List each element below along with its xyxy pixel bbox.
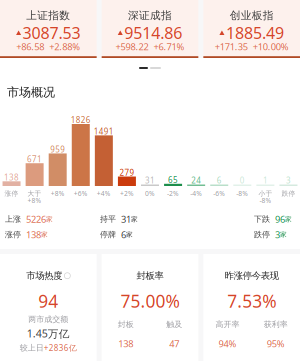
- staticText: 1826: [71, 115, 91, 125]
- staticText: 两市成交额: [28, 314, 68, 324]
- staticText: 3: [275, 228, 280, 241]
- staticText: 1885.49: [226, 22, 284, 43]
- staticText: 家: [126, 230, 133, 239]
- staticText: 跌停: [254, 230, 270, 239]
- staticText: 1491: [94, 126, 114, 137]
- staticText: +2.88%: [49, 40, 80, 53]
- staticText: 小于: [258, 189, 272, 198]
- staticText: 65: [168, 174, 178, 185]
- staticText: -8%: [259, 196, 271, 205]
- staticText: 获利率: [264, 319, 288, 329]
- staticText: 上涨: [5, 214, 21, 224]
- staticText: 昨涨停今表现: [225, 270, 279, 281]
- staticText: 1: [263, 175, 268, 186]
- staticText: +2836亿: [44, 342, 77, 353]
- staticText: 24: [191, 175, 201, 186]
- staticText: 0%: [145, 189, 155, 198]
- staticText: 138: [26, 228, 41, 241]
- staticText: 家: [280, 230, 287, 239]
- staticText: 大于: [28, 189, 42, 198]
- staticText: 封板率: [136, 270, 163, 281]
- staticText: 涨停: [4, 189, 18, 198]
- staticText: +8%: [51, 189, 65, 198]
- button[interactable]: 创业板指: [203, 0, 300, 58]
- staticText: -8%: [236, 189, 248, 198]
- staticText: 家: [46, 215, 53, 223]
- staticText: 市场热度: [26, 270, 62, 281]
- staticText: 较上日: [20, 343, 44, 353]
- staticText: 0: [240, 175, 245, 186]
- staticText: 市场概况: [7, 85, 55, 100]
- staticText: 95%: [267, 337, 285, 350]
- staticText: 6: [121, 228, 126, 241]
- staticText: 138: [4, 172, 19, 183]
- staticText: +171.35: [215, 40, 248, 53]
- staticText: 1.45万亿: [27, 326, 70, 340]
- staticText: 47: [169, 337, 179, 350]
- staticText: -6%: [213, 189, 225, 198]
- staticText: 6: [217, 175, 222, 186]
- staticText: 5226: [26, 213, 46, 225]
- staticText: 94: [38, 289, 58, 312]
- staticText: 涨停: [5, 230, 21, 239]
- staticText: 下跌: [254, 214, 270, 224]
- staticText: 封板: [118, 319, 134, 329]
- staticText: -4%: [190, 189, 202, 198]
- staticText: 96: [275, 213, 285, 225]
- staticText: 7.53%: [227, 289, 276, 312]
- staticText: 3: [286, 175, 291, 186]
- staticText: 31: [121, 213, 131, 225]
- staticText: 94%: [218, 337, 236, 350]
- staticText: 家: [41, 230, 48, 239]
- staticText: 上证指数: [26, 9, 70, 22]
- button[interactable]: 上证指数: [0, 0, 97, 58]
- staticText: 31: [145, 175, 155, 186]
- staticText: 75.00%: [120, 289, 179, 312]
- staticText: 停牌: [100, 230, 116, 239]
- staticText: 触及: [166, 319, 182, 329]
- staticText: 671: [27, 154, 42, 164]
- staticText: 959: [50, 144, 65, 155]
- staticText: 9514.86: [124, 22, 182, 43]
- staticText: +86.58: [16, 40, 44, 53]
- staticText: +8%: [28, 196, 42, 205]
- staticText: 家: [131, 215, 138, 223]
- staticText: +2%: [120, 189, 134, 198]
- staticText: +598.22: [115, 40, 148, 53]
- staticText: +6.71%: [153, 40, 184, 53]
- staticText: +4%: [97, 189, 111, 198]
- staticText: 家: [285, 215, 292, 223]
- staticText: 138: [118, 337, 133, 350]
- staticText: 深证成指: [128, 9, 172, 22]
- staticText: 跌停: [281, 189, 295, 198]
- staticText: 3087.53: [23, 22, 81, 43]
- staticText: 高开率: [215, 319, 239, 329]
- button[interactable]: 昨涨停今表现: [203, 254, 300, 361]
- staticText: 创业板指: [230, 9, 274, 22]
- button[interactable]: 市场热度: [0, 254, 97, 361]
- staticText: -2%: [167, 189, 179, 198]
- button[interactable]: 深证成指: [102, 0, 198, 58]
- staticText: +10.00%: [253, 40, 289, 53]
- staticText: 持平: [100, 214, 116, 224]
- staticText: +6%: [74, 189, 88, 198]
- button[interactable]: 封板率: [102, 254, 198, 361]
- staticText: 279: [119, 167, 134, 178]
